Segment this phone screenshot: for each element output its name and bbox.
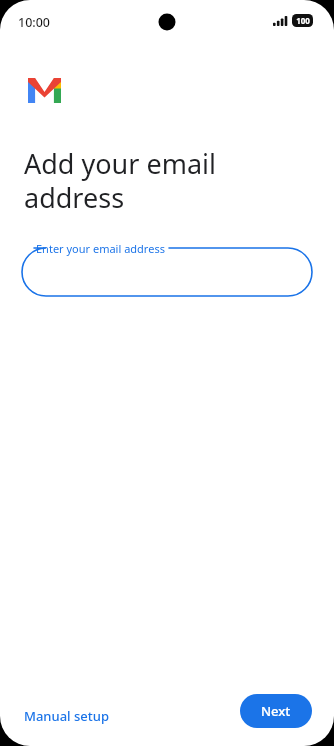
staticText: 100 [296, 15, 310, 26]
other: Gmail [28, 78, 61, 103]
staticText: 10:00 [18, 14, 51, 31]
button[interactable]: Enter your email address [22, 238, 312, 296]
button[interactable]: Manual setup [14, 700, 119, 732]
staticText: Add your email address [24, 145, 216, 216]
staticText: Enter your email address [36, 241, 165, 256]
button[interactable]: Next [240, 694, 312, 728]
staticText: Next [261, 702, 291, 720]
staticText: Manual setup [24, 707, 109, 725]
